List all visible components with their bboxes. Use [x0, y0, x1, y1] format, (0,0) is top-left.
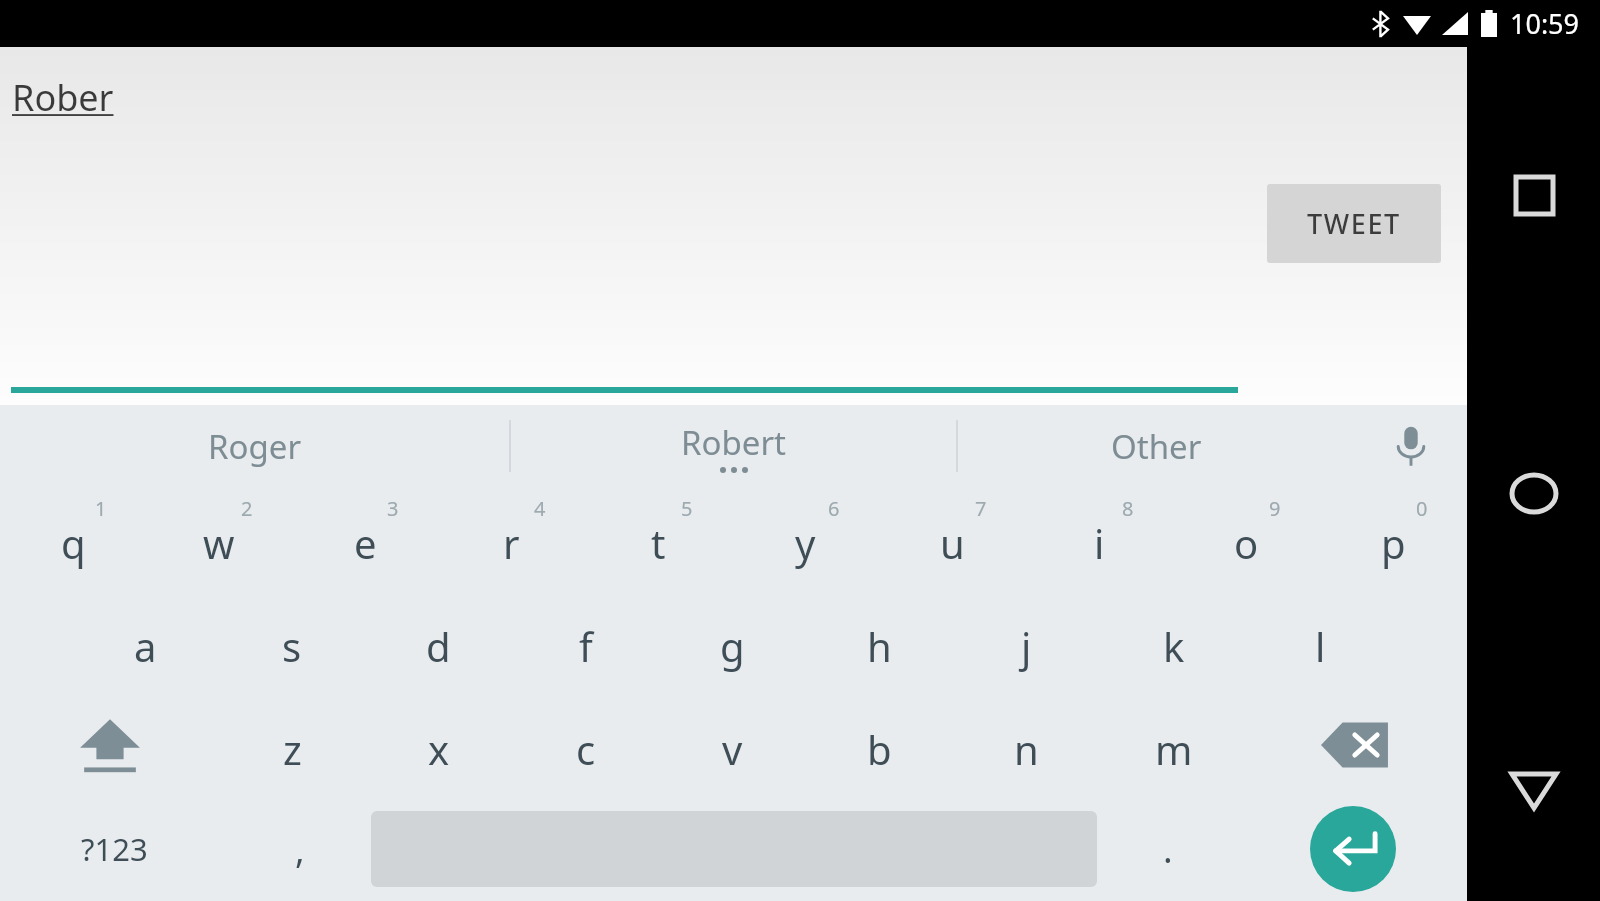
staticText: TWEET: [1307, 205, 1401, 242]
staticText: 0: [1416, 495, 1428, 522]
button[interactable]: Other: [958, 405, 1355, 487]
staticText: Roger: [208, 424, 302, 469]
button[interactable]: s: [218, 590, 365, 693]
button[interactable]: v: [659, 693, 806, 797]
staticText: 7: [975, 495, 987, 522]
staticText: Robert: [681, 420, 786, 465]
staticText: a: [134, 619, 157, 673]
button[interactable]: Back: [1489, 746, 1579, 836]
button[interactable]: z: [219, 693, 365, 797]
staticText: 2: [241, 495, 253, 522]
staticText: e: [354, 516, 377, 570]
staticText: 8: [1122, 495, 1134, 522]
staticText: z: [283, 722, 302, 776]
button[interactable]: q: [0, 487, 146, 590]
staticText: ?123: [81, 828, 148, 870]
staticText: 6: [828, 495, 840, 522]
staticText: Other: [1111, 424, 1202, 469]
button[interactable]: Enter: [1239, 797, 1467, 901]
button[interactable]: TWEET: [1267, 184, 1441, 263]
staticText: o: [1234, 516, 1259, 570]
button[interactable]: Home: [1489, 448, 1579, 538]
staticText: g: [720, 619, 745, 673]
staticText: y: [795, 516, 816, 570]
staticText: Rober: [12, 73, 114, 122]
button[interactable]: u: [879, 487, 1026, 590]
staticText: ,: [295, 825, 305, 874]
button[interactable]: Shift: [0, 693, 219, 797]
button[interactable]: i: [1026, 487, 1173, 590]
staticText: j: [1021, 619, 1032, 673]
staticText: f: [579, 619, 593, 673]
staticText: s: [282, 619, 302, 673]
button[interactable]: ,: [229, 797, 371, 901]
button[interactable]: j: [953, 590, 1100, 693]
staticText: 1: [95, 495, 107, 522]
button[interactable]: c: [512, 693, 659, 797]
button[interactable]: o: [1173, 487, 1320, 590]
staticText: x: [428, 722, 450, 776]
staticText: 4: [534, 495, 546, 522]
button[interactable]: Backspace: [1247, 693, 1467, 797]
staticText: m: [1155, 722, 1193, 776]
button[interactable]: .: [1097, 797, 1239, 901]
staticText: u: [940, 516, 965, 570]
button[interactable]: n: [953, 693, 1100, 797]
staticText: d: [426, 619, 451, 673]
button[interactable]: m: [1100, 693, 1247, 797]
button[interactable]: b: [806, 693, 953, 797]
button[interactable]: x: [365, 693, 512, 797]
button[interactable]: e: [292, 487, 438, 590]
button[interactable]: ?123: [0, 797, 229, 901]
button[interactable]: k: [1100, 590, 1247, 693]
staticText: p: [1381, 516, 1406, 570]
button[interactable]: Recents: [1489, 150, 1579, 240]
staticText: 3: [387, 495, 399, 522]
button[interactable]: l: [1247, 590, 1394, 693]
staticText: .: [1163, 825, 1173, 874]
button[interactable]: h: [806, 590, 953, 693]
staticText: c: [576, 722, 596, 776]
staticText: 10:59: [1510, 5, 1580, 42]
staticText: k: [1163, 619, 1185, 673]
staticText: n: [1014, 722, 1039, 776]
staticText: h: [867, 619, 892, 673]
staticText: 5: [681, 495, 693, 522]
staticText: v: [722, 722, 743, 776]
button[interactable]: y: [732, 487, 879, 590]
button[interactable]: d: [365, 590, 512, 693]
staticText: r: [503, 516, 520, 570]
button[interactable]: r: [438, 487, 585, 590]
button[interactable]: g: [659, 590, 806, 693]
button[interactable]: f: [512, 590, 659, 693]
button[interactable]: a: [72, 590, 218, 693]
button[interactable]: Voice input: [1355, 405, 1467, 487]
staticText: b: [867, 722, 892, 776]
button[interactable]: w: [146, 487, 292, 590]
staticText: w: [203, 516, 235, 570]
staticText: l: [1315, 619, 1326, 673]
staticText: 9: [1269, 495, 1281, 522]
staticText: q: [61, 516, 86, 570]
button[interactable]: Robert: [511, 405, 956, 487]
button[interactable]: t: [585, 487, 732, 590]
staticText: i: [1094, 516, 1105, 570]
staticText: t: [651, 516, 666, 570]
button[interactable]: Roger: [0, 405, 509, 487]
button[interactable]: p: [1320, 487, 1467, 590]
